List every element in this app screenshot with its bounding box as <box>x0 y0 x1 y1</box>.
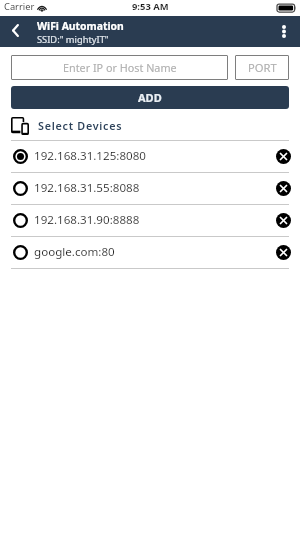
staticText: SSID:" mightyIT" <box>37 33 109 46</box>
staticText: Enter IP or Host Name <box>63 60 177 75</box>
staticText: google.com:80 <box>34 244 115 260</box>
staticText: 192.168.31.125:8080 <box>34 148 146 164</box>
button[interactable]: Select Devices <box>0 109 300 140</box>
button[interactable]: Remove 192.168.31.125:8080 <box>273 146 293 166</box>
button[interactable]: Back <box>0 16 30 47</box>
staticText: Select Devices <box>38 118 123 133</box>
button[interactable]: google.com:80 <box>0 237 300 268</box>
staticText: WiFi Automation <box>37 19 124 33</box>
button[interactable]: Remove 192.168.31.55:8088 <box>273 178 293 198</box>
button[interactable]: Remove 192.168.31.90:8888 <box>273 210 293 230</box>
button[interactable]: 192.168.31.125:8080 <box>0 141 300 172</box>
staticText: 9:53 AM <box>132 0 169 13</box>
button[interactable]: 192.168.31.55:8088 <box>0 173 300 204</box>
button[interactable]: 192.168.31.90:8888 <box>0 205 300 236</box>
staticText: Carrier <box>4 0 35 13</box>
staticText: PORT <box>248 60 277 75</box>
staticText: 192.168.31.90:8888 <box>34 212 140 228</box>
button[interactable]: More options <box>271 16 297 47</box>
staticText: 192.168.31.55:8088 <box>34 180 140 196</box>
button[interactable]: Enter IP or Host Name <box>11 55 228 80</box>
button[interactable]: PORT <box>235 55 289 80</box>
staticText: ADD <box>138 90 162 105</box>
button[interactable]: ADD <box>11 86 289 109</box>
button[interactable]: Remove google.com:80 <box>273 242 293 262</box>
